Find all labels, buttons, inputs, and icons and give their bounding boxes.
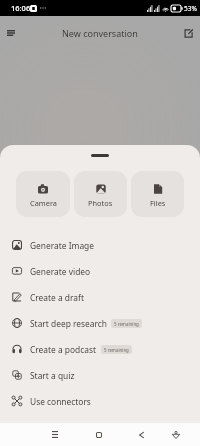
button[interactable]: Home [77,423,121,446]
staticText: Create a podcast [30,344,97,355]
staticText: 16:06 [11,3,31,13]
staticText: Files [150,198,166,208]
button[interactable]: Files [131,171,184,217]
staticText: New conversation [62,27,138,39]
button[interactable]: Start deep research [0,310,200,336]
staticText: Camera [30,198,57,208]
staticText: Photos [88,198,113,208]
button[interactable]: Start a quiz [0,362,200,388]
button[interactable]: Recent apps [32,423,77,446]
staticText: 5 remaining [104,347,129,353]
staticText: Create a draft [30,292,84,303]
button[interactable]: Back [121,423,161,446]
button[interactable]: Generate video [0,258,200,284]
button[interactable]: Use connectors [0,388,200,414]
button[interactable]: Hide keyboard [161,423,190,446]
button[interactable]: Camera [16,171,70,217]
staticText: Generate Image [30,240,94,251]
staticText: 53% [184,4,197,13]
button[interactable]: Create a podcast [0,336,200,362]
staticText: Start a quiz [30,370,75,381]
button[interactable]: New conversation [178,23,198,43]
staticText: Start deep research [30,318,107,329]
button[interactable]: Photos [74,171,127,217]
staticText: Generate video [30,266,91,277]
button[interactable]: Menu [1,23,21,43]
button[interactable]: Generate Image [0,232,200,258]
staticText: 5 remaining [114,321,139,327]
staticText: Use connectors [30,396,91,407]
button[interactable]: Create a draft [0,284,200,310]
